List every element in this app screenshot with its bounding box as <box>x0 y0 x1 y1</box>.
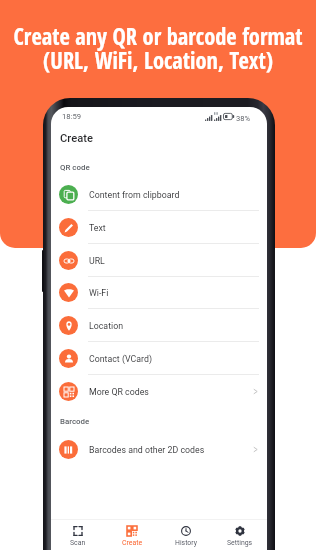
staticText: Contact (VCard) <box>89 354 153 364</box>
staticText: Create <box>60 132 93 145</box>
staticText: Content from clipboard <box>89 190 180 200</box>
other: Scan <box>73 526 83 536</box>
button[interactable]: Contact (VCard) <box>51 342 267 375</box>
button[interactable]: Create <box>105 525 159 547</box>
button[interactable]: History <box>159 525 213 547</box>
staticText: QR code <box>60 163 90 172</box>
staticText: Settings <box>227 539 253 547</box>
button[interactable]: Wi-Fi <box>51 276 267 309</box>
button[interactable]: Location <box>51 309 267 342</box>
staticText: More QR codes <box>89 387 149 397</box>
other: Create <box>127 526 137 536</box>
other: Settings <box>235 526 245 536</box>
staticText: Create any QR or barcode format <box>0 21 316 52</box>
button[interactable]: Settings <box>213 525 267 547</box>
staticText: Text <box>89 223 106 233</box>
button[interactable]: URL <box>51 244 267 277</box>
staticText: Wi-Fi <box>89 288 109 298</box>
button[interactable]: Scan <box>51 525 105 547</box>
staticText: (URL, WiFi, Location, Text) <box>0 45 316 76</box>
staticText: Scan <box>70 539 86 547</box>
button[interactable]: Text <box>51 211 267 244</box>
staticText: URL <box>89 256 105 266</box>
staticText: Location <box>89 321 124 331</box>
button[interactable]: Content from clipboard <box>51 178 267 211</box>
staticText: Barcode <box>60 417 90 426</box>
staticText: 38% <box>236 114 251 122</box>
staticText: 18:59 <box>62 112 82 121</box>
button[interactable]: More QR codes <box>51 375 267 408</box>
staticText: Barcodes and other 2D codes <box>89 445 205 455</box>
button[interactable]: Barcodes and other 2D codes <box>51 433 267 466</box>
other: History <box>181 526 191 536</box>
staticText: History <box>175 539 197 547</box>
staticText: Create <box>122 539 143 547</box>
